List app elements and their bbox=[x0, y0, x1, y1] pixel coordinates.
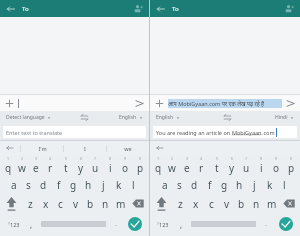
button[interactable]: b bbox=[234, 194, 249, 213]
button[interactable]: c bbox=[53, 194, 68, 213]
staticText: 7 bbox=[245, 156, 248, 161]
button[interactable]: Backspace bbox=[128, 194, 148, 213]
button[interactable]: 4 bbox=[43, 155, 58, 175]
button[interactable]: Attach bbox=[154, 98, 165, 109]
button[interactable]: ? bbox=[152, 213, 174, 235]
button[interactable]: 0 bbox=[284, 155, 299, 175]
button[interactable]: s bbox=[172, 175, 187, 194]
button[interactable]: m bbox=[264, 194, 279, 213]
button[interactable]: a bbox=[157, 175, 172, 194]
button[interactable]: Backspace bbox=[279, 194, 299, 213]
button[interactable]: 2 bbox=[15, 155, 29, 175]
button[interactable]: 2 bbox=[165, 155, 179, 175]
button[interactable]: v bbox=[68, 194, 83, 213]
staticText: t bbox=[64, 161, 68, 175]
staticText: j bbox=[253, 178, 256, 192]
button[interactable]: Shift bbox=[1, 194, 22, 213]
button[interactable]: Space bbox=[188, 213, 259, 235]
button[interactable]: we bbox=[107, 141, 149, 155]
button[interactable]: Swap languages bbox=[222, 112, 233, 123]
button[interactable]: s bbox=[21, 175, 36, 194]
button[interactable]: k bbox=[111, 175, 126, 194]
button[interactable]: English bbox=[117, 113, 145, 122]
button[interactable]: 7 bbox=[88, 155, 103, 175]
button[interactable]: l bbox=[277, 175, 292, 194]
staticText: w bbox=[18, 161, 26, 175]
button[interactable]: 9 bbox=[118, 155, 133, 175]
button[interactable]: j bbox=[247, 175, 262, 194]
button[interactable]: n bbox=[98, 194, 113, 213]
button[interactable]: a bbox=[7, 175, 21, 194]
button[interactable]: , bbox=[25, 213, 38, 235]
staticText: v bbox=[73, 197, 79, 211]
button[interactable]: I bbox=[64, 141, 106, 155]
button[interactable]: Previous bbox=[0, 141, 20, 155]
button[interactable]: Hindi bbox=[273, 113, 296, 122]
button[interactable]: Space bbox=[38, 213, 109, 235]
staticText: b bbox=[238, 197, 245, 211]
button[interactable]: f bbox=[202, 175, 217, 194]
button[interactable]: n bbox=[249, 194, 264, 213]
button[interactable]: Enter text to translate bbox=[6, 126, 143, 138]
staticText: e bbox=[184, 161, 190, 175]
button[interactable]: Add contact bbox=[132, 3, 144, 15]
button[interactable]: English bbox=[154, 113, 182, 122]
button[interactable]: v bbox=[219, 194, 234, 213]
button[interactable]: Done bbox=[122, 213, 147, 235]
button[interactable]: x bbox=[188, 194, 204, 213]
staticText: n bbox=[102, 197, 109, 211]
button[interactable]: 8 bbox=[103, 155, 118, 175]
button[interactable]: g bbox=[217, 175, 232, 194]
button[interactable]: Swap languages bbox=[79, 112, 90, 123]
button[interactable]: 0 bbox=[133, 155, 148, 175]
button[interactable]: Previous bbox=[150, 141, 170, 155]
button[interactable]: You are reading an article on bbox=[156, 126, 294, 138]
button[interactable]: Send bbox=[285, 98, 296, 109]
button[interactable]: h bbox=[81, 175, 96, 194]
button[interactable]: Shift bbox=[151, 194, 172, 213]
button[interactable]: l bbox=[126, 175, 141, 194]
button[interactable]: j bbox=[96, 175, 111, 194]
button[interactable]: Attach bbox=[4, 98, 15, 109]
button[interactable]: 9 bbox=[269, 155, 284, 175]
button[interactable]: 5 bbox=[209, 155, 224, 175]
button[interactable]: 5 bbox=[58, 155, 73, 175]
button[interactable]: g bbox=[66, 175, 81, 194]
button[interactable]: I'm bbox=[21, 141, 63, 155]
button[interactable]: m bbox=[113, 194, 128, 213]
staticText: To bbox=[22, 5, 29, 13]
button[interactable]: x bbox=[38, 194, 53, 213]
button[interactable]: 6 bbox=[224, 155, 239, 175]
button[interactable]: d bbox=[187, 175, 202, 194]
button[interactable]: Done bbox=[273, 213, 298, 235]
button[interactable]: 3 bbox=[179, 155, 194, 175]
button[interactable]: b bbox=[83, 194, 98, 213]
button[interactable]: , bbox=[174, 213, 188, 235]
button[interactable]: Back bbox=[155, 3, 167, 15]
button[interactable]: 4 bbox=[194, 155, 209, 175]
staticText: f bbox=[208, 178, 212, 192]
staticText: ? bbox=[157, 221, 159, 226]
button[interactable]: 1 bbox=[1, 155, 15, 175]
staticText: s bbox=[177, 178, 182, 192]
button[interactable]: Send bbox=[134, 98, 145, 109]
button[interactable]: z bbox=[22, 194, 38, 213]
button[interactable]: Detect language bbox=[4, 113, 53, 122]
button[interactable]: c bbox=[204, 194, 219, 213]
button[interactable]: Add contact bbox=[283, 3, 295, 15]
button[interactable]: Back bbox=[5, 3, 17, 15]
staticText: Enter text to translate bbox=[6, 129, 63, 136]
button[interactable]: 8 bbox=[254, 155, 269, 175]
button[interactable]: 7 bbox=[239, 155, 254, 175]
button[interactable]: d bbox=[36, 175, 51, 194]
button[interactable]: h bbox=[232, 175, 247, 194]
button[interactable]: k bbox=[262, 175, 277, 194]
button[interactable]: z bbox=[172, 194, 188, 213]
button[interactable]: 6 bbox=[73, 155, 88, 175]
button[interactable]: ? bbox=[2, 213, 25, 235]
button[interactable]: 3 bbox=[29, 155, 43, 175]
button[interactable]: 1 bbox=[151, 155, 165, 175]
button[interactable]: f bbox=[51, 175, 66, 194]
